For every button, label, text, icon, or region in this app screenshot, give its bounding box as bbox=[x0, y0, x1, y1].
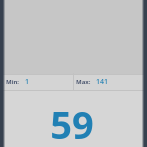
staticText: 59 bbox=[50, 98, 94, 147]
button[interactable]: Max: 141 bbox=[74, 73, 144, 90]
button[interactable]: Current value 59 bbox=[3, 91, 144, 147]
staticText: Max: bbox=[76, 78, 91, 86]
button[interactable]: Min: 1 bbox=[3, 73, 73, 90]
staticText: Min: bbox=[6, 78, 20, 86]
staticText: 141 bbox=[96, 77, 109, 87]
button[interactable]: Chart area bbox=[3, 0, 144, 74]
staticText: 1 bbox=[25, 77, 30, 87]
